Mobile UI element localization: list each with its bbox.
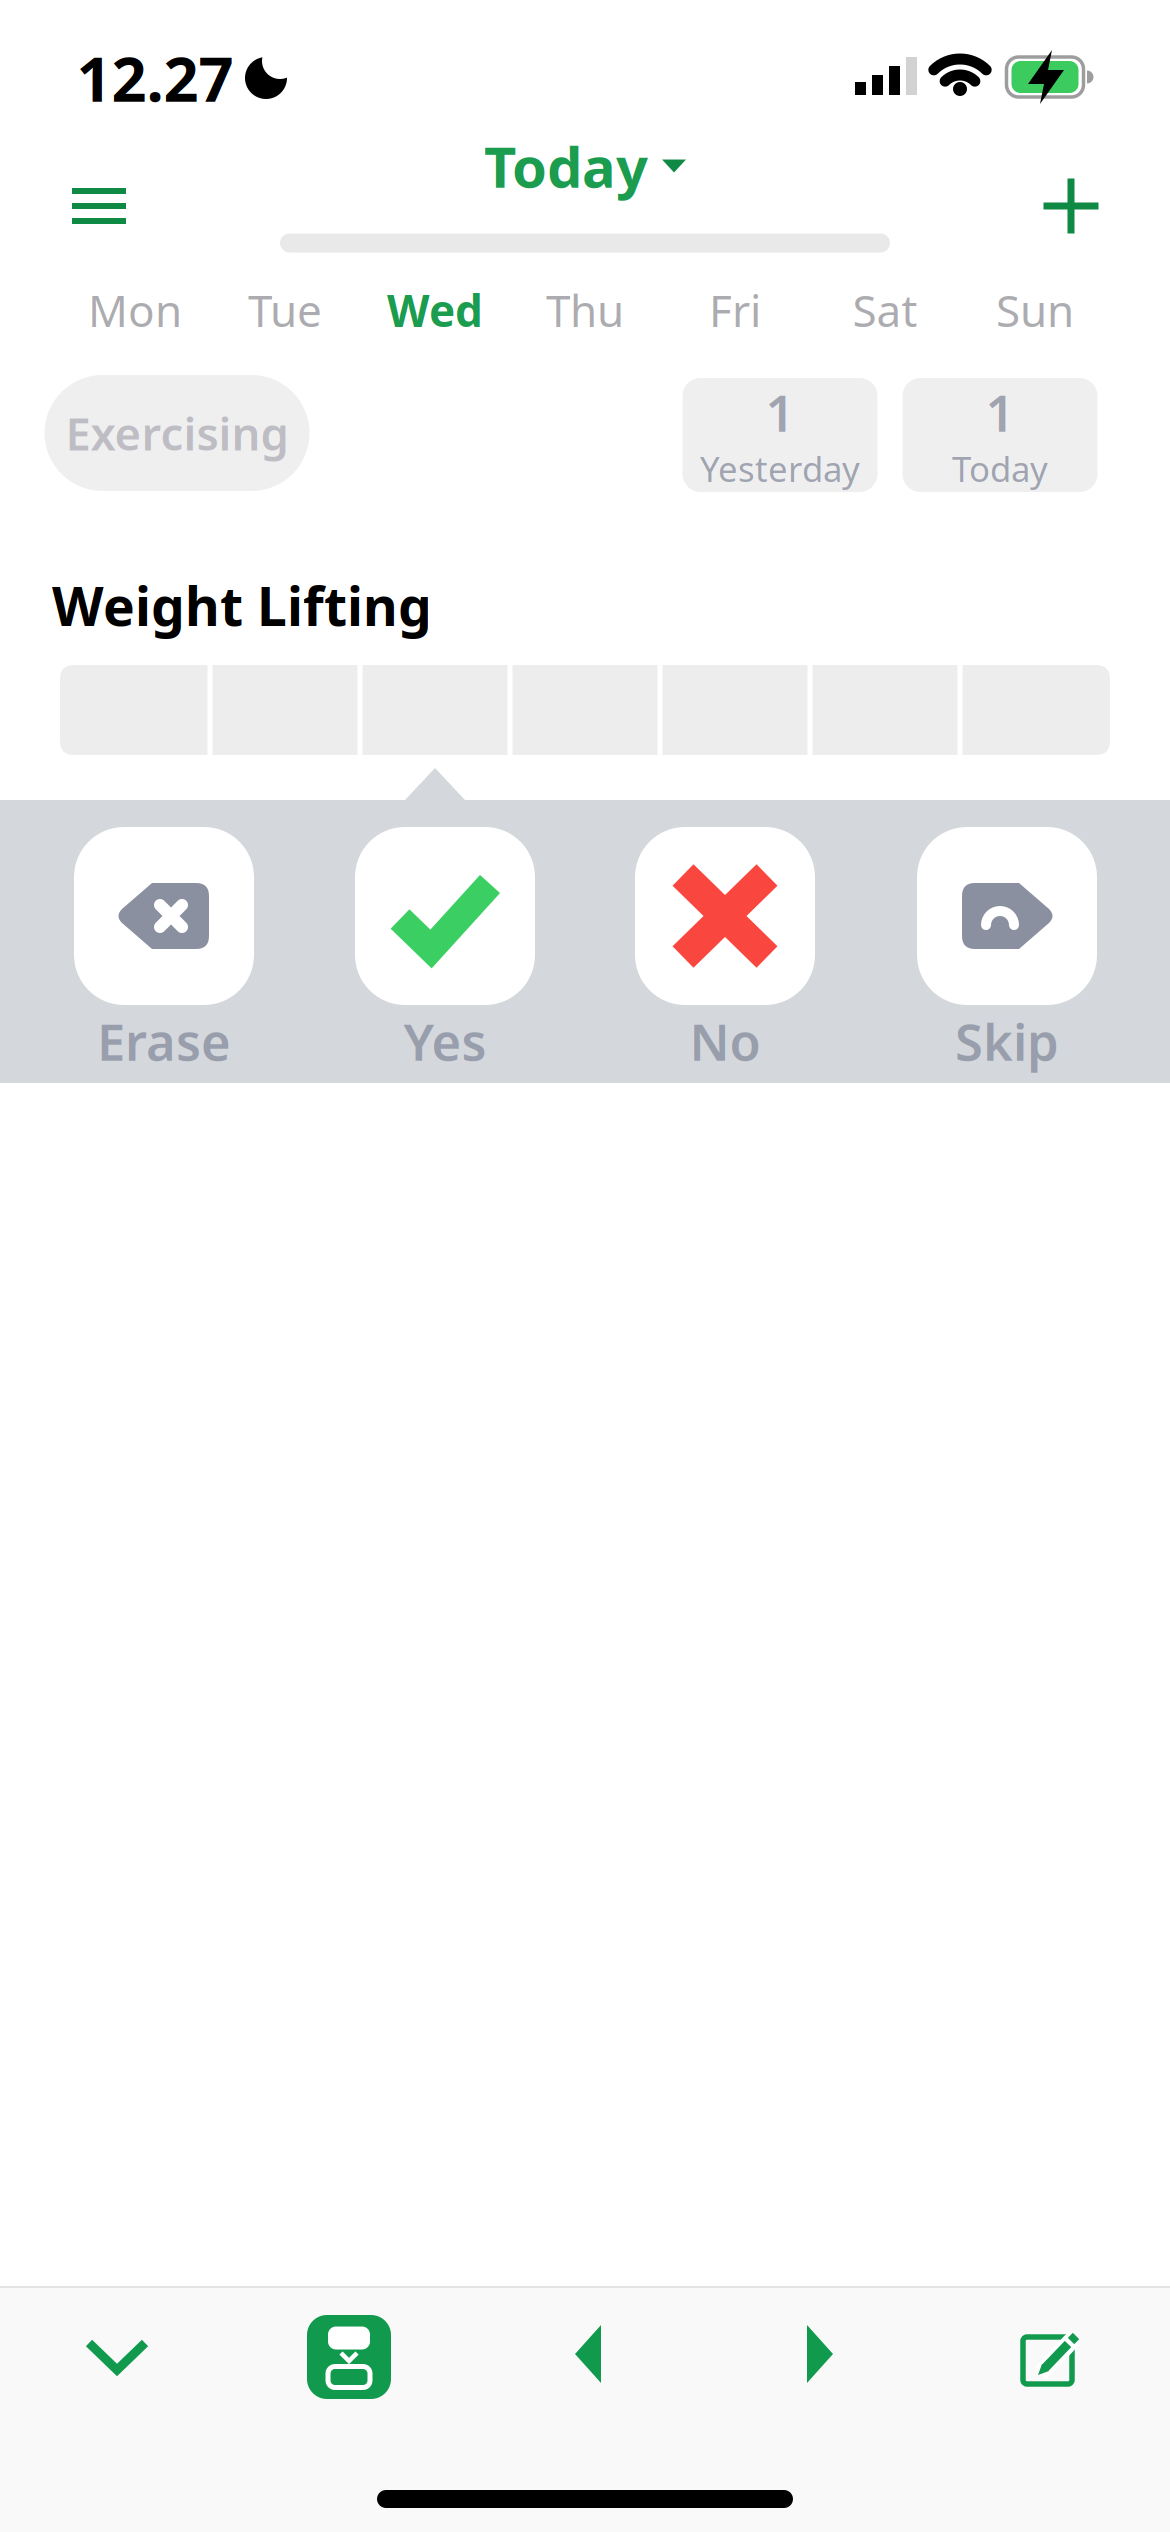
staticText: Mon <box>88 281 182 339</box>
staticText: 1 <box>985 378 1014 446</box>
button[interactable]: 1 <box>682 378 877 492</box>
button[interactable]: 1 <box>902 378 1097 492</box>
button[interactable]: Erase <box>74 827 254 1005</box>
staticText: Sat <box>852 281 917 339</box>
button[interactable]: Edit <box>1023 2326 1083 2384</box>
button[interactable]: Add journal item <box>1043 178 1098 233</box>
staticText: Exercising <box>65 403 288 463</box>
button[interactable]: Journal <box>307 2315 391 2399</box>
staticText: No <box>689 1007 760 1075</box>
button[interactable]: Today <box>484 129 686 203</box>
staticText: 12.27 <box>76 37 233 119</box>
staticText: Today <box>484 129 648 203</box>
staticText: Yes <box>403 1007 486 1075</box>
button[interactable]: No <box>635 827 815 1005</box>
staticText: Wed <box>387 281 483 339</box>
button[interactable]: Skip <box>917 827 1097 1005</box>
button[interactable]: Next day <box>807 2325 833 2383</box>
staticText: Today <box>952 446 1048 492</box>
staticText: Fri <box>709 281 761 339</box>
staticText: Weight Lifting <box>52 570 432 641</box>
staticText: Skip <box>955 1007 1059 1075</box>
button[interactable]: Menu <box>72 188 126 224</box>
button[interactable]: Collapse <box>86 2340 148 2374</box>
staticText: Thu <box>546 281 624 339</box>
button[interactable]: Previous day <box>575 2325 601 2383</box>
button[interactable]: Yes <box>355 827 535 1005</box>
staticText: Erase <box>97 1007 231 1075</box>
staticText: 1 <box>765 378 794 446</box>
staticText: Yesterday <box>700 446 860 492</box>
staticText: Tue <box>248 281 322 339</box>
button[interactable]: Exercising <box>44 375 309 491</box>
staticText: Sun <box>996 281 1074 339</box>
